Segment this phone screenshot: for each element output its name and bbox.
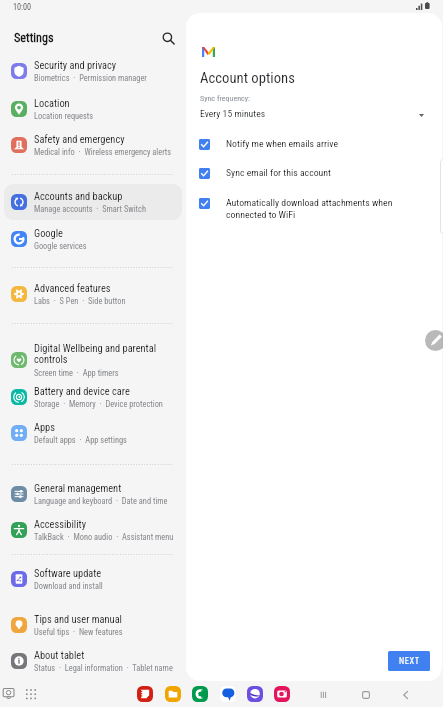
staticText: Sync frequency: (200, 94, 250, 103)
button[interactable]: Recent apps (317, 687, 333, 703)
staticText: Google (34, 227, 182, 239)
button[interactable]: Google (4, 221, 182, 257)
button[interactable]: Sync email for this account (199, 167, 432, 179)
button[interactable]: Home (358, 687, 374, 703)
button[interactable]: Security and privacy (4, 53, 182, 89)
button[interactable]: NEXT (388, 651, 430, 671)
staticText: 10:00 (13, 2, 32, 12)
staticText: Software update (34, 567, 182, 579)
staticText: Tips and user manual (34, 613, 182, 625)
button[interactable]: Advanced features (4, 276, 182, 312)
button[interactable]: All apps (25, 688, 38, 701)
staticText: Download and install (34, 581, 103, 591)
button[interactable]: Battery and device care (4, 379, 182, 415)
staticText: Location (34, 97, 182, 109)
staticText: Notify me when emails arrive (226, 138, 416, 149)
button[interactable]: Messages (220, 686, 236, 702)
staticText: Storage · Memory · Device protection (34, 399, 163, 409)
button[interactable]: Notify me when emails arrive (199, 138, 432, 150)
button[interactable]: Phone (192, 686, 208, 702)
staticText: Manage accounts · Smart Switch (34, 204, 146, 214)
staticText: Settings (14, 31, 54, 45)
staticText: Biometrics · Permission manager (34, 73, 147, 83)
button[interactable]: General management (4, 476, 182, 512)
staticText: Language and keyboard · Date and time (34, 496, 168, 506)
button[interactable]: Search (158, 28, 178, 48)
staticText: Advanced features (34, 282, 182, 294)
staticText: Safety and emergency (34, 133, 182, 145)
button[interactable]: My Files (165, 686, 181, 702)
staticText: Status · Legal information · Tablet name (34, 663, 173, 673)
staticText: Screen time · App timers (34, 368, 119, 378)
staticText: Sync email for this account (226, 167, 416, 178)
button[interactable]: Back (398, 687, 414, 703)
button[interactable]: Tips and user manual (4, 607, 182, 643)
staticText: TalkBack · Mono audio · Assistant menu (34, 532, 174, 542)
staticText: Automatically download attachments when … (226, 197, 401, 221)
staticText: Useful tips · New features (34, 627, 123, 637)
staticText: Labs · S Pen · Side button (34, 296, 126, 306)
staticText: Location requests (34, 111, 94, 121)
staticText: Account options (200, 69, 295, 86)
staticText: About tablet (34, 649, 182, 661)
staticText: Security and privacy (34, 59, 182, 71)
button[interactable]: About tablet (4, 643, 182, 679)
staticText: Every 15 minutes (200, 108, 266, 119)
button[interactable]: Edge panel handle (440, 159, 443, 234)
staticText: Accounts and backup (34, 190, 182, 202)
staticText: Digital Wellbeing and parental controls (34, 342, 166, 366)
staticText: General management (34, 482, 182, 494)
button[interactable]: Location (4, 91, 182, 127)
staticText: Google services (34, 241, 87, 251)
staticText: NEXT (399, 656, 420, 666)
staticText: Battery and device care (34, 385, 182, 397)
button[interactable]: Software update (4, 561, 182, 597)
button[interactable]: Samsung Notes (137, 686, 153, 702)
staticText: Apps (34, 421, 182, 433)
button[interactable]: Digital Wellbeing and parental controls (4, 337, 182, 383)
button[interactable]: Recents (2, 687, 17, 702)
button[interactable]: Apps (4, 415, 182, 451)
button[interactable]: Camera (274, 686, 290, 702)
button[interactable]: Automatically download attachments when … (199, 197, 432, 221)
button[interactable]: Accessibility (4, 512, 182, 548)
button[interactable]: Safety and emergency (4, 127, 182, 163)
staticText: Default apps · App settings (34, 435, 127, 445)
staticText: Medical info · Wireless emergency alerts (34, 147, 172, 157)
button[interactable]: Internet (247, 686, 263, 702)
staticText: Accessibility (34, 518, 182, 530)
button[interactable]: Edit (425, 330, 443, 351)
button[interactable]: Accounts and backup (4, 184, 182, 220)
